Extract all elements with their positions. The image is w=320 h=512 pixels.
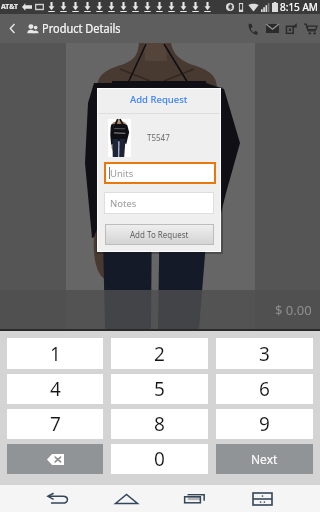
button[interactable]: 5 [111,374,208,404]
button[interactable]: 3 [216,338,313,369]
staticText: 1 [50,341,61,367]
staticText: 2 [154,341,165,367]
button[interactable]: Back [24,485,92,512]
button[interactable]: Home [92,485,160,512]
button[interactable]: 8 [111,409,208,439]
button[interactable]: Next [216,444,313,474]
button[interactable]: Email [262,14,282,43]
button[interactable]: Back [0,14,24,43]
button[interactable]: Notes [104,192,214,214]
staticText: AT&T [1,2,19,12]
staticText: $ 0.00 [275,301,312,319]
staticText: 0 [154,446,165,472]
staticText: 8 [154,411,165,437]
button[interactable]: Shopping cart [301,14,319,43]
button[interactable]: 9 [216,409,313,439]
staticText: T5547 [147,132,170,143]
staticText: 5 [154,376,165,402]
button[interactable]: 2 [111,338,208,369]
button[interactable]: 6 [216,374,313,404]
button[interactable]: Add To Request [105,224,214,245]
button[interactable]: 1 [7,338,103,369]
button[interactable]: 0 [111,444,208,474]
staticText: Product Details [42,20,121,37]
staticText: Next [251,451,278,467]
staticText: Notes [110,197,137,210]
button[interactable]: 4 [7,374,103,404]
button[interactable]: Units [104,162,216,184]
staticText: 3 [259,341,270,367]
staticText: Add To Request [130,229,189,240]
button[interactable]: Recent apps [160,485,228,512]
staticText: 4 [50,376,61,402]
staticText: 6 [259,376,270,402]
staticText: Units [110,167,134,180]
staticText: 9 [259,411,270,437]
staticText: 7 [50,411,61,437]
button[interactable]: Backspace [7,444,103,474]
button[interactable]: Menu [228,485,296,512]
staticText: Add Request [130,93,188,106]
button[interactable]: Call [242,14,262,43]
button[interactable]: 7 [7,409,103,439]
button[interactable]: Share [282,14,301,43]
staticText: 8:15 AM [280,0,318,14]
